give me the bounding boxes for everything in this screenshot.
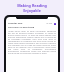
button[interactable]: Chapter One bbox=[6, 17, 58, 72]
staticText: Making Reading Enjoyable bbox=[17, 3, 47, 13]
staticText: The Theory of Everything bbox=[8, 26, 35, 29]
staticText: Chapter One bbox=[8, 22, 23, 25]
staticText: Lorem ipsum dolor sit amet consectetur a… bbox=[8, 30, 56, 54]
staticText: 12 min bbox=[46, 22, 53, 25]
button[interactable]: Bookmark bbox=[54, 23, 56, 25]
